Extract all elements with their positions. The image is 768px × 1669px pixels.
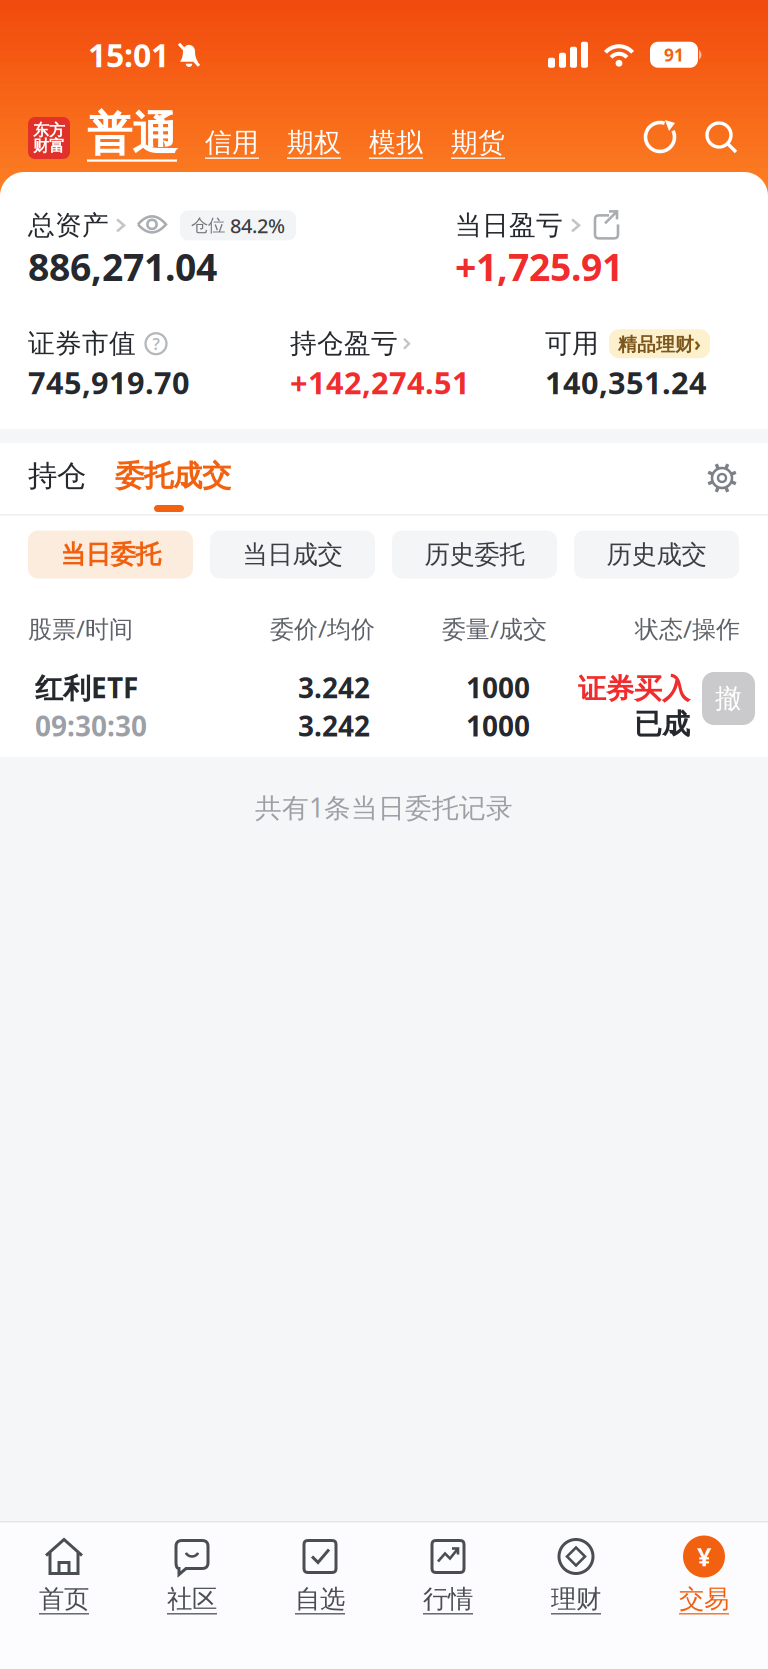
staticText: 证券买入 <box>578 672 690 706</box>
staticText: 09:30:30 <box>35 707 147 744</box>
staticText: 91 <box>664 43 684 66</box>
staticText: 15:01 <box>88 33 169 76</box>
staticText: 共有1条当日委托记录 <box>255 789 513 825</box>
button[interactable]: 搜索 <box>705 121 738 154</box>
staticText: 745,919.70 <box>28 362 190 403</box>
staticText: ? <box>152 333 159 354</box>
button[interactable]: ¥ <box>640 1534 768 1615</box>
staticText: 当日盈亏 <box>455 209 563 242</box>
staticText: 持仓 <box>28 458 86 494</box>
staticText: 1000 <box>466 707 530 744</box>
staticText: 当日成交 <box>242 539 342 570</box>
staticText: 总资产 <box>28 209 109 242</box>
staticText: 已成 <box>634 707 690 741</box>
button[interactable]: 历史成交 <box>574 530 739 578</box>
staticText: 普通 <box>87 106 177 162</box>
button[interactable]: 普通 <box>87 106 177 162</box>
staticText: 东方 <box>33 120 65 140</box>
button[interactable]: 社区 <box>128 1534 256 1615</box>
button[interactable]: 期货 <box>451 126 505 159</box>
staticText: 精品理财› <box>618 331 701 356</box>
button[interactable]: 分享 <box>592 210 621 240</box>
staticText: 140,351.24 <box>545 362 707 403</box>
staticText: 社区 <box>167 1583 217 1615</box>
staticText: ¥ <box>697 1540 711 1573</box>
button[interactable]: 说明 <box>144 332 168 356</box>
staticText: 红利ETF <box>35 669 138 706</box>
staticText: 可用 <box>545 327 599 360</box>
staticText: 委价/均价 <box>270 613 375 644</box>
button[interactable]: 信用 <box>205 126 259 159</box>
button[interactable]: 自选 <box>256 1534 384 1615</box>
button[interactable]: 期权 <box>287 126 341 159</box>
staticText: 模拟 <box>369 126 423 159</box>
staticText: 委量/成交 <box>442 613 547 644</box>
staticText: 期权 <box>287 126 341 159</box>
staticText: 886,271.04 <box>28 242 217 291</box>
button[interactable]: 精品理财› <box>609 329 710 358</box>
staticText: 财富 <box>33 136 65 156</box>
staticText: 状态/操作 <box>635 613 740 644</box>
staticText: 当日委托 <box>60 539 160 570</box>
staticText: 信用 <box>205 126 259 159</box>
button[interactable]: 历史委托 <box>392 530 557 578</box>
staticText: 历史成交 <box>606 539 706 570</box>
button[interactable]: 仓位 <box>180 210 296 240</box>
staticText: 股票/时间 <box>28 613 133 644</box>
staticText: 3.242 <box>298 669 370 706</box>
staticText: 历史委托 <box>424 539 524 570</box>
staticText: 证券市值 <box>28 327 136 360</box>
button[interactable]: 撤单 <box>702 672 755 725</box>
staticText: 1000 <box>466 669 530 706</box>
button[interactable]: 刷新 <box>643 119 679 155</box>
button[interactable]: 隐藏金额 <box>136 214 168 236</box>
staticText: 3.242 <box>298 707 370 744</box>
button[interactable]: 设置 <box>705 461 739 495</box>
staticText: +1,725.91 <box>455 242 623 291</box>
staticText: 委托成交 <box>115 458 231 494</box>
staticText: 首页 <box>39 1583 89 1615</box>
staticText: 理财 <box>551 1583 601 1615</box>
staticText: 撤 <box>715 682 742 715</box>
button[interactable]: 理财 <box>512 1534 640 1615</box>
staticText: 行情 <box>423 1583 473 1615</box>
staticText: 84.2% <box>230 212 285 239</box>
button[interactable]: 行情 <box>384 1534 512 1615</box>
button[interactable]: 委托成交 <box>115 458 231 494</box>
button[interactable]: 当日成交 <box>210 530 375 578</box>
button[interactable]: 模拟 <box>369 126 423 159</box>
button[interactable]: 首页 <box>0 1534 128 1615</box>
staticText: +142,274.51 <box>290 362 470 403</box>
staticText: 期货 <box>451 126 505 159</box>
staticText: 仓位 <box>191 215 225 236</box>
button[interactable]: 当日委托 <box>28 530 193 578</box>
staticText: 持仓盈亏 <box>290 327 398 360</box>
button[interactable]: 持仓 <box>28 458 86 494</box>
staticText: 自选 <box>295 1583 345 1615</box>
staticText: 交易 <box>679 1583 729 1615</box>
